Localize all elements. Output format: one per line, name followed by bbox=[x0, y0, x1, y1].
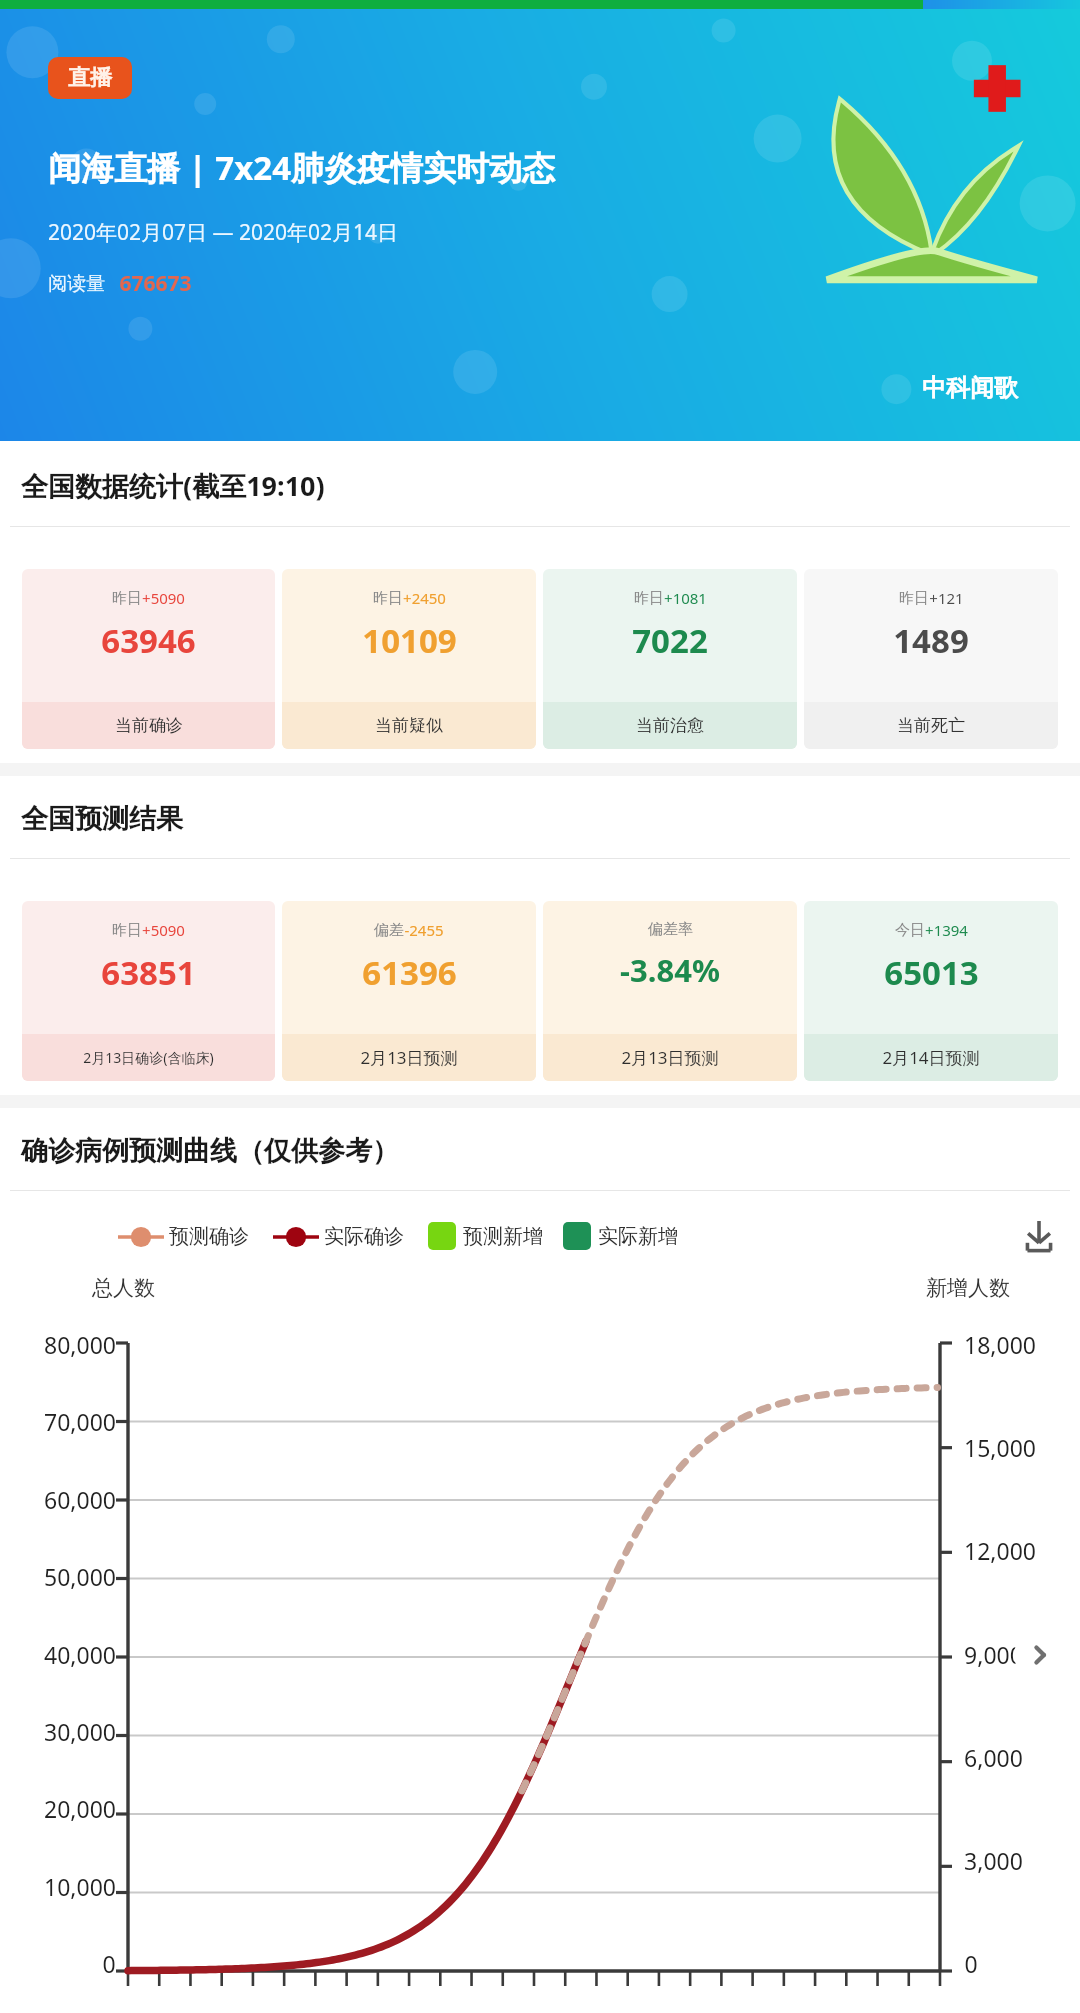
staticText: 昨日 bbox=[899, 589, 929, 608]
staticText: 昨日 bbox=[112, 589, 142, 608]
button[interactable]: 实际新增 bbox=[563, 1222, 678, 1250]
staticText: 当前死亡 bbox=[897, 715, 965, 736]
staticText: 阅读量 bbox=[48, 272, 105, 296]
button[interactable]: 预测确诊 bbox=[118, 1224, 249, 1249]
staticText: 30,000 bbox=[44, 1716, 116, 1747]
staticText: 2月13日预测 bbox=[360, 1046, 458, 1069]
staticText: 63946 bbox=[101, 618, 196, 663]
staticText: 60,000 bbox=[44, 1484, 116, 1515]
staticText: 偏差 bbox=[374, 921, 404, 940]
button[interactable]: 直播 bbox=[48, 57, 132, 99]
button[interactable]: 今日 bbox=[804, 901, 1058, 1081]
staticText: 50,000 bbox=[44, 1561, 116, 1592]
staticText: 7022 bbox=[632, 618, 708, 663]
staticText: 676673 bbox=[119, 269, 192, 298]
button[interactable]: 预测新增 bbox=[428, 1222, 543, 1250]
staticText: 40,000 bbox=[44, 1639, 116, 1670]
staticText: 70,000 bbox=[44, 1406, 116, 1437]
button[interactable]: 昨日 bbox=[543, 569, 797, 749]
staticText: 昨日 bbox=[112, 921, 142, 940]
staticText: 闻海直播 | 7x24肺炎疫情实时动态 bbox=[48, 145, 556, 190]
staticText: 15,000 bbox=[964, 1432, 1036, 1463]
staticText: 18,000 bbox=[964, 1329, 1036, 1360]
staticText: -3.84% bbox=[620, 949, 720, 991]
button[interactable]: 昨日 bbox=[804, 569, 1058, 749]
staticText: 新增人数 bbox=[926, 1275, 1010, 1301]
staticText: 3,000 bbox=[964, 1845, 1023, 1876]
staticText: 预测新增 bbox=[463, 1224, 543, 1249]
staticText: 2月14日预测 bbox=[882, 1046, 980, 1069]
button[interactable]: Next bbox=[1014, 1629, 1066, 1681]
staticText: 65013 bbox=[884, 950, 979, 995]
button[interactable]: 昨日 bbox=[282, 569, 536, 749]
staticText: +1081 bbox=[664, 588, 707, 608]
staticText: 0 bbox=[102, 1948, 116, 1979]
staticText: 1489 bbox=[893, 618, 969, 663]
staticText: 63851 bbox=[101, 950, 196, 995]
staticText: 今日 bbox=[895, 921, 925, 940]
staticText: 2020年02月07日 — 2020年02月14日 bbox=[48, 218, 399, 247]
staticText: +5090 bbox=[142, 920, 185, 940]
staticText: 昨日 bbox=[373, 589, 403, 608]
staticText: +5090 bbox=[142, 588, 185, 608]
staticText: 全国预测结果 bbox=[21, 802, 1080, 836]
staticText: 2月13日确诊(含临床) bbox=[83, 1048, 214, 1067]
staticText: 中科闻歌 bbox=[922, 373, 1018, 403]
staticText: 10,000 bbox=[44, 1871, 116, 1902]
staticText: 10109 bbox=[362, 618, 457, 663]
staticText: 当前确诊 bbox=[115, 715, 183, 736]
staticText: 0 bbox=[964, 1948, 978, 1979]
staticText: 61396 bbox=[362, 950, 457, 995]
staticText: +1394 bbox=[925, 920, 968, 940]
button[interactable]: 偏差 bbox=[282, 901, 536, 1081]
staticText: 全国数据统计(截至19:10) bbox=[21, 467, 1080, 504]
staticText: 确诊病例预测曲线（仅供参考） bbox=[21, 1134, 1080, 1168]
staticText: 20,000 bbox=[44, 1793, 116, 1824]
staticText: -2455 bbox=[404, 920, 444, 940]
staticText: +121 bbox=[929, 588, 964, 608]
staticText: 预测确诊 bbox=[169, 1224, 249, 1249]
button[interactable]: Download bbox=[1016, 1213, 1062, 1259]
button[interactable]: 昨日 bbox=[22, 569, 275, 749]
staticText: 2月13日预测 bbox=[621, 1046, 719, 1069]
staticText: 昨日 bbox=[634, 589, 664, 608]
staticText: 实际新增 bbox=[598, 1224, 678, 1249]
staticText: 9,000 bbox=[964, 1639, 1023, 1670]
staticText: 直播 bbox=[68, 64, 112, 92]
staticText: 实际确诊 bbox=[324, 1224, 404, 1249]
button[interactable]: 昨日 bbox=[22, 901, 275, 1081]
staticText: 总人数 bbox=[92, 1275, 155, 1301]
staticText: 6,000 bbox=[964, 1742, 1023, 1773]
staticText: 当前疑似 bbox=[375, 715, 443, 736]
staticText: +2450 bbox=[403, 588, 446, 608]
button[interactable]: 偏差率 bbox=[543, 901, 797, 1081]
staticText: 当前治愈 bbox=[636, 715, 704, 736]
staticText: 80,000 bbox=[44, 1329, 116, 1360]
button[interactable]: 实际确诊 bbox=[273, 1224, 404, 1249]
staticText: 12,000 bbox=[964, 1535, 1036, 1566]
staticText: 偏差率 bbox=[648, 920, 693, 939]
